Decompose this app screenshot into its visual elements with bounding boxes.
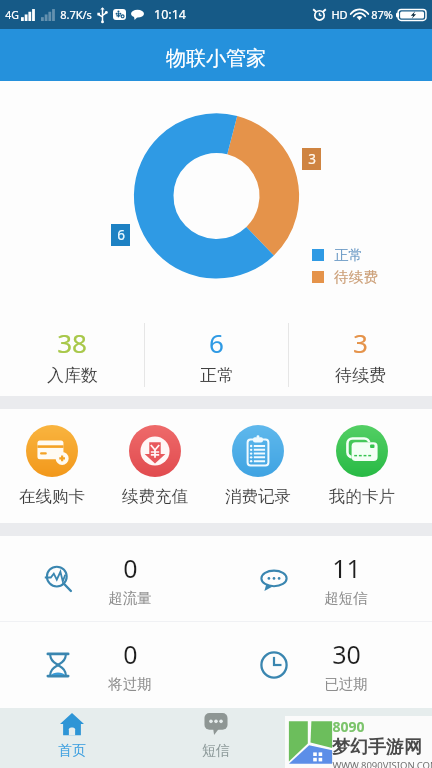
button[interactable]: 在线购卡 <box>0 409 103 523</box>
button[interactable]: 短信 <box>144 708 288 768</box>
staticText: 入库数 <box>47 365 98 386</box>
button[interactable]: 30 <box>216 622 432 708</box>
button[interactable]: 首页 <box>0 708 144 768</box>
staticText: 超流量 <box>108 589 152 607</box>
button[interactable]: 11 <box>216 536 432 621</box>
button[interactable]: 续费充值 <box>103 409 206 523</box>
button[interactable]: 6 <box>145 314 288 396</box>
button[interactable]: 我的卡片 <box>310 409 414 523</box>
staticText: 0 <box>123 637 138 671</box>
staticText: 已过期 <box>324 675 368 693</box>
staticText: 短信 <box>202 742 230 760</box>
staticText: 在线购卡 <box>19 486 85 507</box>
staticText: 正常 <box>334 246 363 264</box>
staticText: 我的卡片 <box>329 486 395 507</box>
staticText: 消费记录 <box>225 486 291 507</box>
staticText: HD <box>331 7 348 22</box>
button[interactable]: 3 <box>289 314 432 396</box>
staticText: 6 <box>209 325 224 360</box>
button[interactable]: 38 <box>0 314 144 396</box>
staticText: 3 <box>353 325 368 360</box>
staticText: 待续费 <box>335 365 386 386</box>
staticText: 将过期 <box>108 675 152 693</box>
staticText: 4G <box>5 8 19 22</box>
staticText: 待续费 <box>334 268 378 286</box>
staticText: 8090 <box>332 717 365 736</box>
staticText: 8.7K/s <box>60 7 92 22</box>
staticText: 正常 <box>200 365 234 386</box>
staticText: 首页 <box>58 742 86 760</box>
staticText: 梦幻手游网 <box>332 736 422 759</box>
staticText: 11 <box>332 551 361 585</box>
staticText: 物联小管家 <box>166 46 266 71</box>
staticText: 30 <box>332 637 361 671</box>
staticText: 10:14 <box>154 6 186 23</box>
staticText: 6 <box>117 226 125 244</box>
staticText: 87% <box>371 7 393 22</box>
staticText: 3 <box>308 150 316 168</box>
staticText: 续费充值 <box>122 486 188 507</box>
staticText: WWW.8090VISION.COM <box>332 759 432 768</box>
staticText: 38 <box>57 325 87 360</box>
button[interactable]: 消费记录 <box>206 409 310 523</box>
staticText: 0 <box>123 551 138 585</box>
button[interactable]: 0 <box>0 622 216 708</box>
staticText: 超短信 <box>324 589 368 607</box>
button[interactable]: 0 <box>0 536 216 621</box>
